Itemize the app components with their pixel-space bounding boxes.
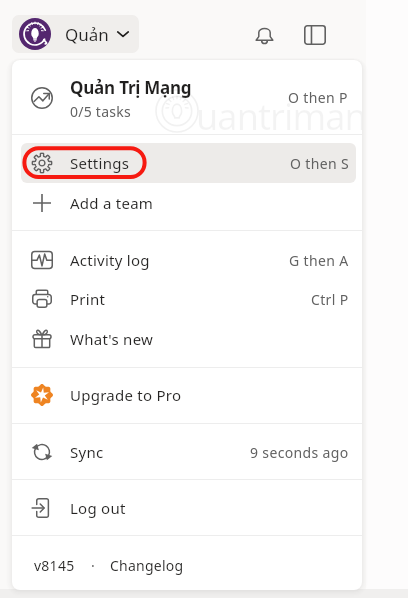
button[interactable]: Activity log xyxy=(21,240,356,280)
staticText: · xyxy=(91,556,95,575)
button[interactable]: Sync xyxy=(21,432,356,472)
staticText: Upgrade to Pro xyxy=(70,385,182,405)
staticText: Quản xyxy=(65,23,109,46)
button[interactable]: Notifications xyxy=(248,19,280,51)
button[interactable]: Changelog xyxy=(110,556,184,575)
staticText: Sync xyxy=(70,442,104,462)
staticText: Log out xyxy=(70,498,126,518)
staticText: Activity log xyxy=(70,250,150,270)
button[interactable]: Upgrade to Pro xyxy=(21,375,356,415)
button[interactable]: Add a team xyxy=(21,183,356,223)
button[interactable]: Log out xyxy=(21,488,356,528)
staticText: O then S xyxy=(290,154,349,173)
staticText: What's new xyxy=(70,329,154,349)
staticText: uantrimang xyxy=(196,92,362,141)
button[interactable]: Print xyxy=(21,279,356,319)
staticText: 0/5 tasks xyxy=(70,102,131,121)
staticText: Print xyxy=(70,289,106,309)
staticText: Add a team xyxy=(70,193,154,213)
button[interactable]: What's new xyxy=(21,319,356,359)
button[interactable]: Quản Trị Mạng xyxy=(12,60,362,134)
button[interactable]: v8145 xyxy=(34,556,75,575)
staticText: 9 seconds ago xyxy=(250,443,349,462)
staticText: Settings xyxy=(70,153,130,173)
staticText: G then A xyxy=(289,251,349,270)
staticText: Quản Trị Mạng xyxy=(70,76,192,99)
staticText: Ctrl P xyxy=(311,290,349,309)
button[interactable]: Toggle side panel xyxy=(299,19,331,51)
button[interactable]: Quản xyxy=(12,15,139,53)
button[interactable]: Settings xyxy=(21,143,356,183)
staticText: O then P xyxy=(288,88,348,107)
